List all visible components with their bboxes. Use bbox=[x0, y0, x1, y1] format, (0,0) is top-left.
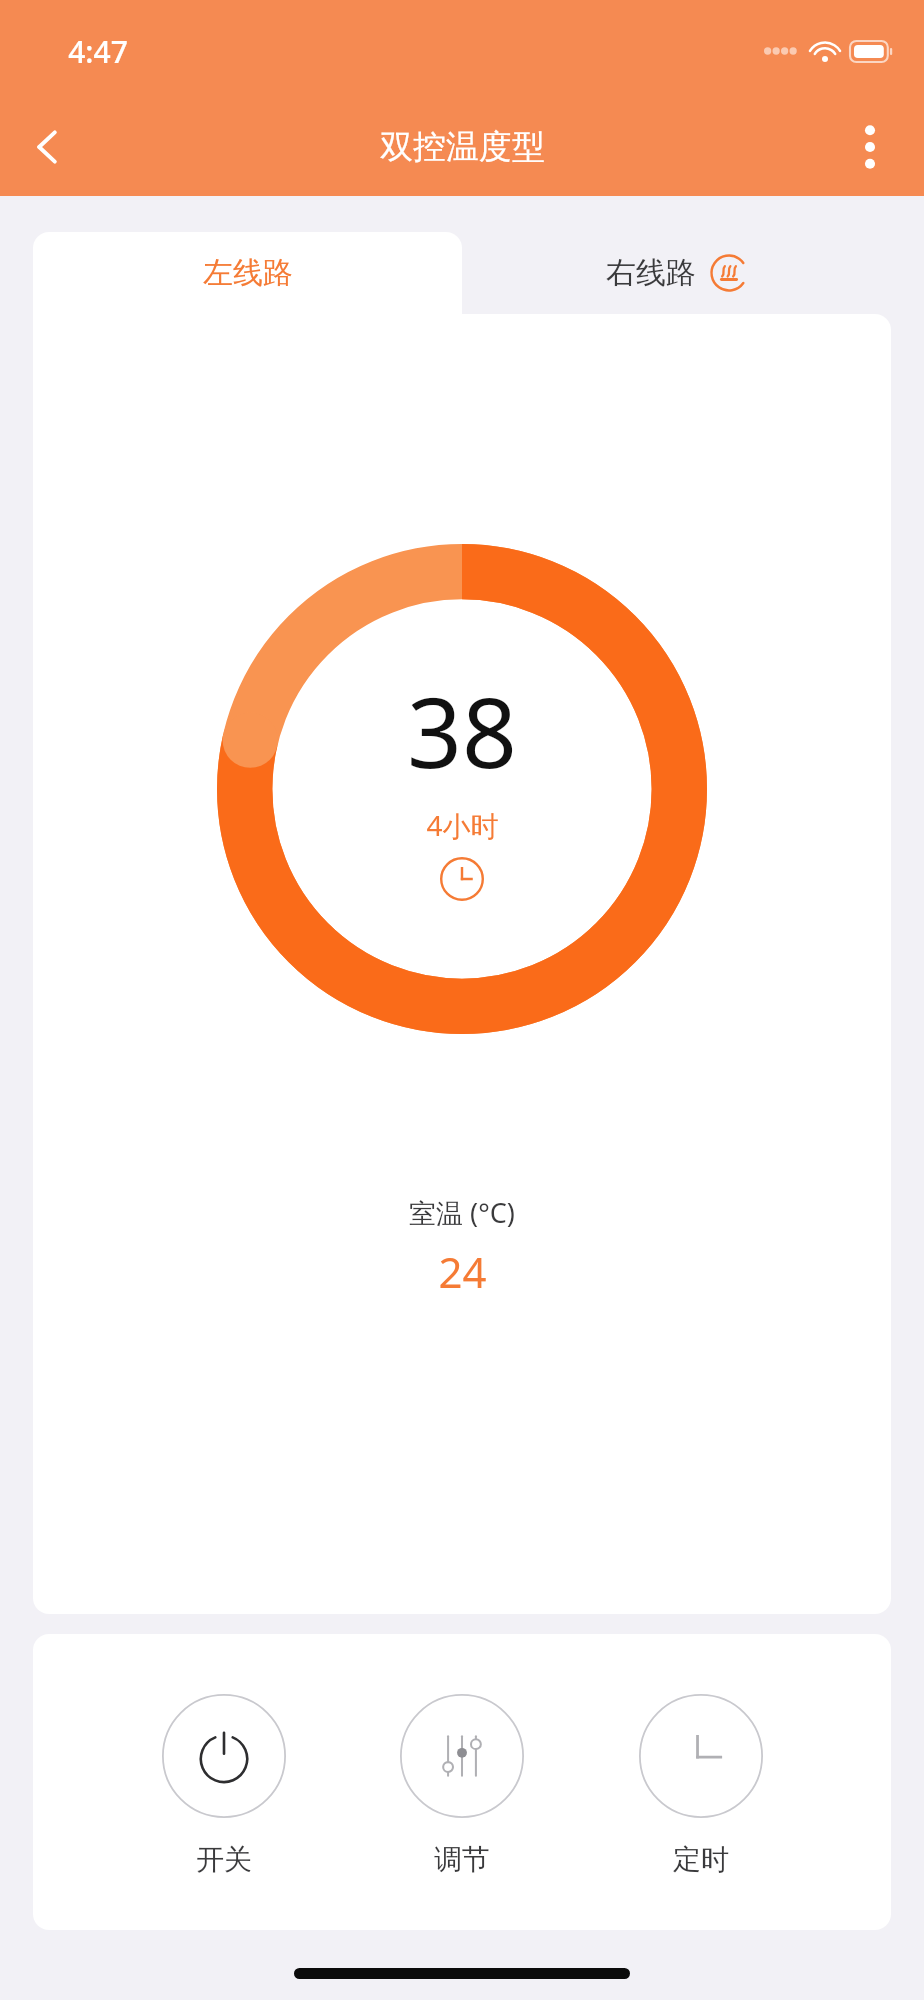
staticText: 定时 bbox=[673, 1842, 729, 1877]
button[interactable]: Back bbox=[6, 105, 90, 189]
staticText: 24 bbox=[438, 1243, 487, 1300]
staticText: 左线路 bbox=[203, 254, 293, 292]
button[interactable]: Adjust bbox=[390, 1690, 534, 1881]
staticText: 调节 bbox=[434, 1842, 490, 1877]
button[interactable]: Timer bbox=[439, 856, 485, 902]
staticText: 室温 (°C) bbox=[409, 1194, 515, 1231]
button[interactable]: Timer bbox=[629, 1690, 773, 1881]
staticText: 38 bbox=[407, 665, 517, 796]
staticText: 右线路 bbox=[606, 254, 696, 292]
staticText: 开关 bbox=[196, 1842, 252, 1877]
button[interactable]: More options bbox=[828, 105, 912, 189]
button[interactable]: Power bbox=[152, 1690, 296, 1881]
staticText: 双控温度型 bbox=[380, 126, 545, 168]
button[interactable]: 左线路 bbox=[33, 232, 462, 314]
staticText: 4:47 bbox=[68, 31, 128, 72]
staticText: 4小时 bbox=[426, 806, 499, 844]
button[interactable]: 右线路 bbox=[462, 232, 891, 314]
